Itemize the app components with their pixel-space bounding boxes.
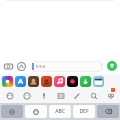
staticText: DEF <box>79 108 89 115</box>
staticText: ABC <box>55 108 65 115</box>
button[interactable]: Edit <box>70 89 83 102</box>
button[interactable]: ABC <box>49 105 71 118</box>
button[interactable]: App 7 <box>93 76 104 87</box>
button[interactable]: App 1 <box>15 76 26 87</box>
button[interactable]: Send <box>107 61 117 71</box>
button[interactable]: Apps <box>16 61 27 72</box>
button[interactable]: App 4 <box>54 76 65 87</box>
button[interactable]: Key <box>25 105 47 118</box>
button[interactable]: Camera <box>3 61 14 72</box>
button[interactable]: App 5 <box>67 76 78 87</box>
button[interactable]: App 3 <box>41 76 52 87</box>
button[interactable]: Backspace <box>97 105 119 118</box>
button[interactable]: App 0 <box>2 76 13 87</box>
button[interactable]: Photos <box>54 89 67 102</box>
button[interactable]: App 6 <box>80 76 91 87</box>
button[interactable] <box>29 61 105 72</box>
button[interactable]: Favorites <box>104 89 117 102</box>
button[interactable]: Stickers <box>3 89 16 102</box>
button[interactable]: DEF <box>73 105 95 118</box>
button[interactable]: App 2 <box>28 76 39 87</box>
button[interactable]: Switch keyboard <box>1 105 23 118</box>
button[interactable]: Audio <box>37 89 50 102</box>
button[interactable]: Search <box>87 89 100 102</box>
button[interactable]: Emoji <box>20 89 33 102</box>
